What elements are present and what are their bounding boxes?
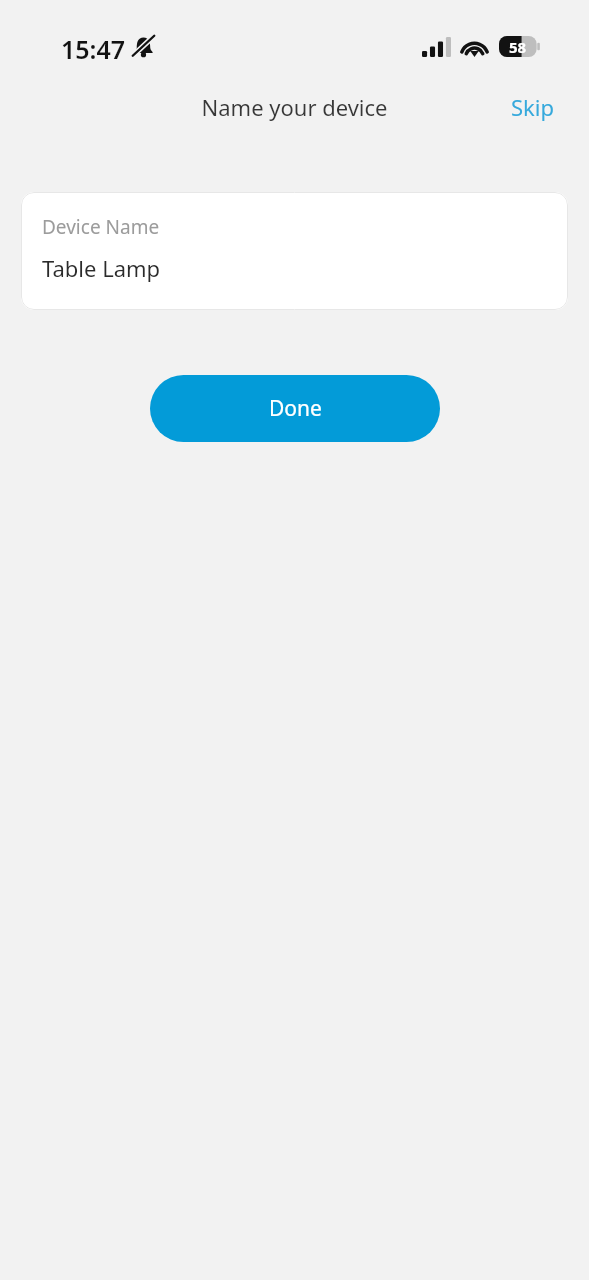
staticText: Table Lamp bbox=[42, 253, 161, 283]
button[interactable]: Device Name bbox=[21, 192, 568, 310]
staticText: Name your device bbox=[0, 92, 589, 122]
button[interactable]: Skip bbox=[496, 84, 570, 130]
other: Notifications silenced bbox=[131, 34, 156, 59]
staticText: 58 bbox=[509, 37, 527, 57]
staticText: Skip bbox=[511, 92, 555, 122]
staticText: Done bbox=[269, 394, 322, 423]
staticText: 15:47 bbox=[61, 32, 126, 66]
staticText: Device Name bbox=[42, 214, 160, 240]
button[interactable]: Done bbox=[150, 375, 440, 442]
